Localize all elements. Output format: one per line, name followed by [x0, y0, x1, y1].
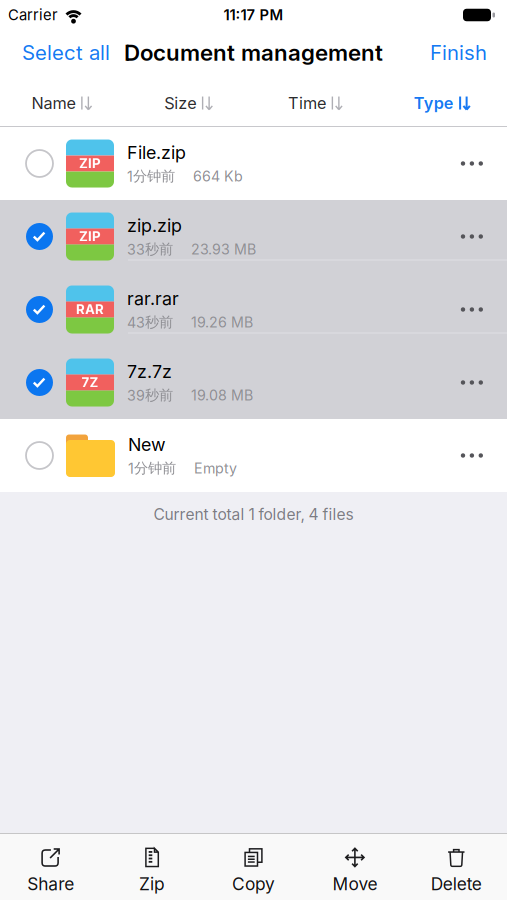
staticText: 1分钟前	[127, 167, 175, 185]
button[interactable]: Size	[127, 72, 254, 128]
staticText: ZIP	[79, 228, 101, 244]
button[interactable]: Copy	[203, 834, 304, 900]
staticText: Time	[288, 93, 326, 113]
staticText: Select all	[22, 40, 110, 65]
button[interactable]: More	[461, 307, 507, 312]
button[interactable]: Move	[304, 834, 406, 900]
staticText: 7z.7z	[127, 361, 172, 382]
staticText: zip.zip	[127, 215, 182, 236]
staticText: Name	[31, 93, 75, 113]
button[interactable]: New	[0, 419, 507, 492]
button[interactable]: More	[461, 161, 507, 166]
staticText: Size	[164, 93, 196, 113]
button[interactable]: Time	[253, 72, 380, 128]
staticText: Document management	[124, 39, 383, 66]
button[interactable]: 7Z	[0, 346, 507, 419]
staticText: 19.26 MB	[191, 314, 253, 331]
staticText: 43秒前	[127, 313, 173, 331]
staticText: Type	[414, 93, 454, 113]
staticText: Move	[332, 873, 377, 894]
staticText: Carrier	[8, 6, 58, 24]
button[interactable]: Zip	[101, 834, 203, 900]
button[interactable]: More	[461, 453, 507, 458]
staticText: File.zip	[127, 142, 186, 163]
button[interactable]: Type	[380, 72, 507, 128]
staticText: Share	[27, 873, 74, 894]
staticText: 11:17 PM	[223, 6, 283, 24]
staticText: Current total 1 folder, 4 files	[153, 505, 353, 524]
staticText: 33秒前	[127, 240, 173, 258]
staticText: 39秒前	[127, 386, 173, 404]
staticText: Zip	[139, 873, 165, 894]
button[interactable]: More	[461, 234, 507, 239]
staticText: Finish	[430, 40, 487, 65]
button[interactable]: Delete	[406, 834, 507, 900]
button[interactable]: ZIP	[0, 127, 507, 200]
staticText: 23.93 MB	[191, 241, 256, 258]
staticText: RAR	[76, 301, 104, 317]
staticText: Empty	[194, 460, 237, 477]
button[interactable]: More	[461, 380, 507, 385]
button[interactable]: Select all	[22, 40, 110, 65]
staticText: Copy	[232, 873, 275, 894]
staticText: Delete	[431, 873, 482, 894]
button[interactable]: ZIP	[0, 200, 507, 273]
staticText: 1分钟前	[128, 459, 176, 477]
staticText: 7Z	[81, 374, 98, 390]
button[interactable]: Share	[0, 834, 101, 900]
staticText: rar.rar	[127, 288, 179, 309]
staticText: ZIP	[79, 155, 101, 171]
button[interactable]: RAR	[0, 273, 507, 346]
staticText: New	[128, 434, 166, 455]
staticText: 664 Kb	[193, 168, 243, 185]
button[interactable]: Finish	[430, 40, 487, 65]
button[interactable]: Name	[0, 72, 127, 128]
staticText: 19.08 MB	[191, 387, 253, 404]
